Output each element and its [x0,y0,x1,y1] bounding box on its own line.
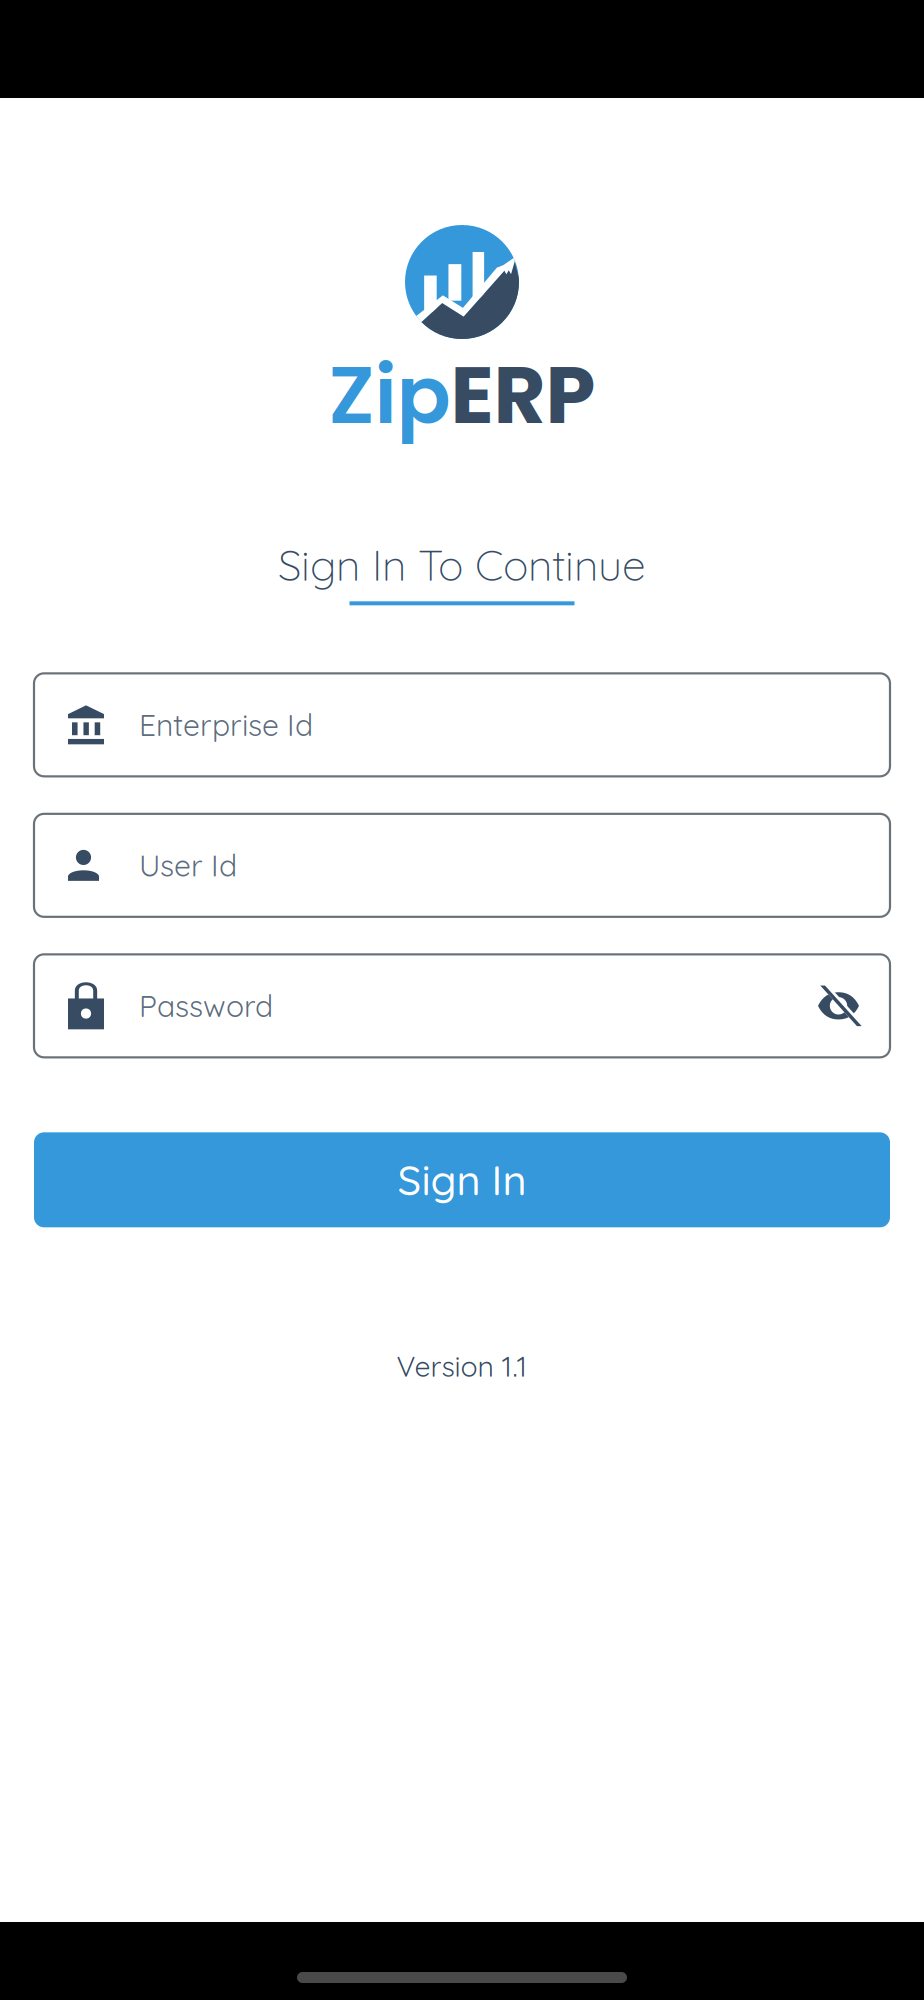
staticText: ERP [450,339,595,451]
staticText: Version 1.1 [396,1348,527,1384]
button[interactable]: User Id [34,814,890,917]
staticText: Zip [328,339,450,451]
button[interactable]: Sign In [34,1132,890,1227]
button[interactable]: Enterprise Id [34,673,890,776]
staticText: Password [139,987,273,1025]
staticText: Enterprise Id [139,706,313,744]
staticText: Sign In [397,1154,526,1206]
button[interactable]: Show password [818,988,890,1024]
staticText: User Id [139,847,237,884]
staticText: Sign In To Continue [278,538,646,591]
button[interactable]: Password [34,954,890,1057]
